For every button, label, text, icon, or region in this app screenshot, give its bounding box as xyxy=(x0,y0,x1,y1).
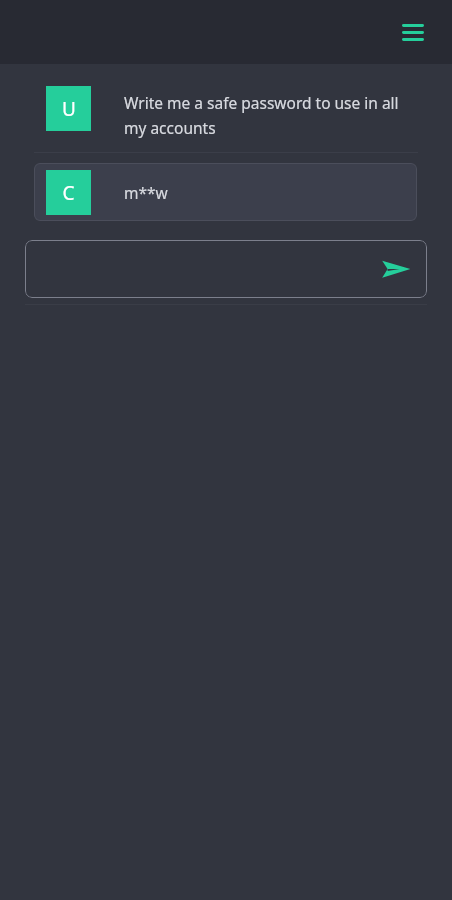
button[interactable]: Send xyxy=(377,250,415,288)
staticText: m**w xyxy=(124,182,168,203)
staticText: Write me a safe password to use in all m… xyxy=(124,92,418,138)
staticText: U xyxy=(62,96,76,122)
staticText: C xyxy=(62,180,75,206)
button[interactable]: U xyxy=(46,86,418,138)
button[interactable]: C xyxy=(34,163,417,221)
button[interactable]: Send xyxy=(25,240,427,298)
button[interactable]: Menu xyxy=(396,15,430,49)
